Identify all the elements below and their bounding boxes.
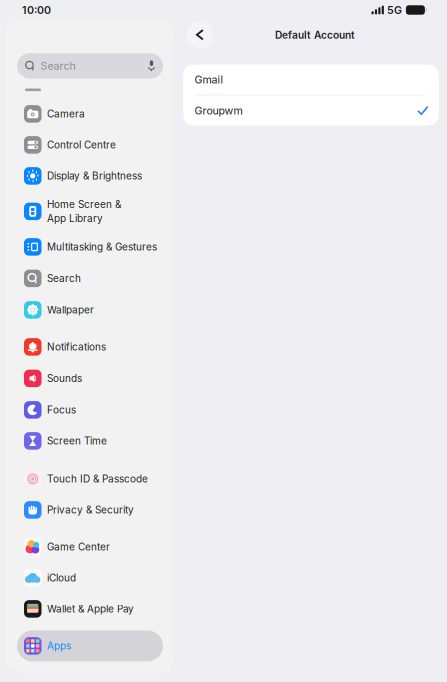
staticText: Home Screen & xyxy=(47,198,121,210)
button[interactable]: Focus xyxy=(17,394,163,425)
button[interactable]: Search xyxy=(17,262,163,294)
button[interactable]: Groupwm xyxy=(183,95,439,126)
staticText: 5G xyxy=(387,3,402,16)
button[interactable]: Search xyxy=(6,53,163,78)
staticText: iCloud xyxy=(47,572,76,584)
button[interactable]: Touch ID & Passcode xyxy=(17,463,163,494)
staticText: App Library xyxy=(47,212,103,224)
staticText: Privacy & Security xyxy=(47,504,134,516)
button[interactable]: Multitasking & Gestures xyxy=(17,231,163,262)
button[interactable]: Notifications xyxy=(17,331,163,362)
staticText: Gmail xyxy=(195,73,224,86)
staticText: 10:00 xyxy=(22,3,51,16)
staticText: Notifications xyxy=(47,341,106,353)
staticText: Screen Time xyxy=(47,435,107,447)
staticText: Display & Brightness xyxy=(47,170,142,182)
button[interactable]: Home Screen & xyxy=(17,191,163,231)
button[interactable]: Screen Time xyxy=(17,425,163,456)
staticText: Multitasking & Gestures xyxy=(47,241,157,253)
staticText: Camera xyxy=(47,108,85,120)
staticText: Groupwm xyxy=(195,104,243,117)
button[interactable]: iCloud xyxy=(17,562,163,593)
button[interactable]: Privacy & Security xyxy=(17,494,163,525)
button[interactable]: Gmail xyxy=(183,64,439,95)
staticText: Wallpaper xyxy=(47,304,94,316)
staticText: Sounds xyxy=(47,372,82,384)
staticText: Wallet & Apple Pay xyxy=(47,603,134,615)
button[interactable]: Sounds xyxy=(17,362,163,394)
staticText: Default Account xyxy=(275,29,355,41)
staticText: Game Center xyxy=(47,541,110,553)
staticText: Search xyxy=(47,272,81,284)
button[interactable]: Back xyxy=(186,21,213,48)
button[interactable]: Wallet & Apple Pay xyxy=(17,593,163,624)
button[interactable]: Wallpaper xyxy=(17,294,163,325)
button[interactable]: Control Centre xyxy=(17,129,163,160)
button[interactable]: Game Center xyxy=(17,531,163,562)
button[interactable]: Apps xyxy=(17,630,163,661)
staticText: Search xyxy=(40,59,75,72)
button[interactable]: Display & Brightness xyxy=(17,160,163,191)
staticText: Focus xyxy=(47,404,76,416)
staticText: Apps xyxy=(47,640,71,652)
staticText: Touch ID & Passcode xyxy=(47,473,148,485)
staticText: Control Centre xyxy=(47,139,116,151)
button[interactable]: Camera xyxy=(17,98,163,129)
